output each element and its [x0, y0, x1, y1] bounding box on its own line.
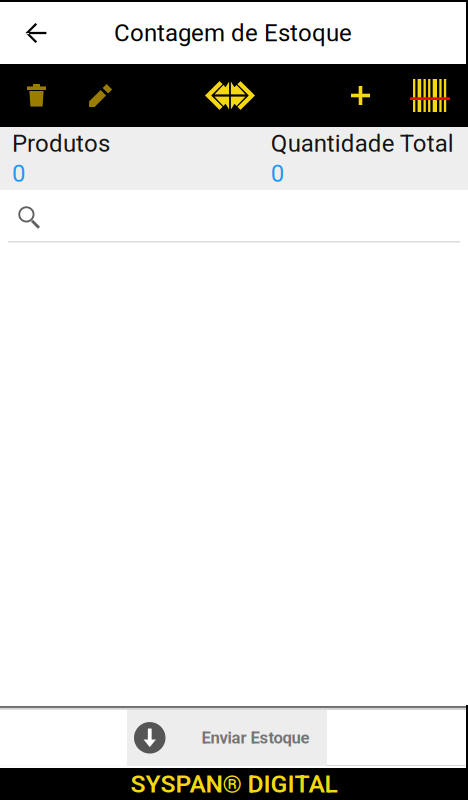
staticText: Quantidade Total — [271, 129, 454, 157]
button[interactable]: Add — [328, 64, 392, 127]
staticText: 0 — [12, 159, 25, 188]
button[interactable]: Delete — [4, 64, 68, 127]
button[interactable]: Scan barcode — [398, 64, 462, 127]
button[interactable]: Back — [0, 2, 72, 64]
button[interactable]: Transfer — [198, 64, 262, 127]
staticText: Produtos — [12, 129, 110, 157]
staticText: 0 — [271, 159, 284, 188]
staticText: Contagem de Estoque — [114, 19, 352, 47]
button[interactable]: Enviar Estoque — [127, 710, 327, 766]
button[interactable]: Edit — [69, 64, 133, 127]
staticText: SYSPAN® DIGITAL — [130, 769, 337, 798]
staticText: Enviar Estoque — [201, 728, 309, 747]
